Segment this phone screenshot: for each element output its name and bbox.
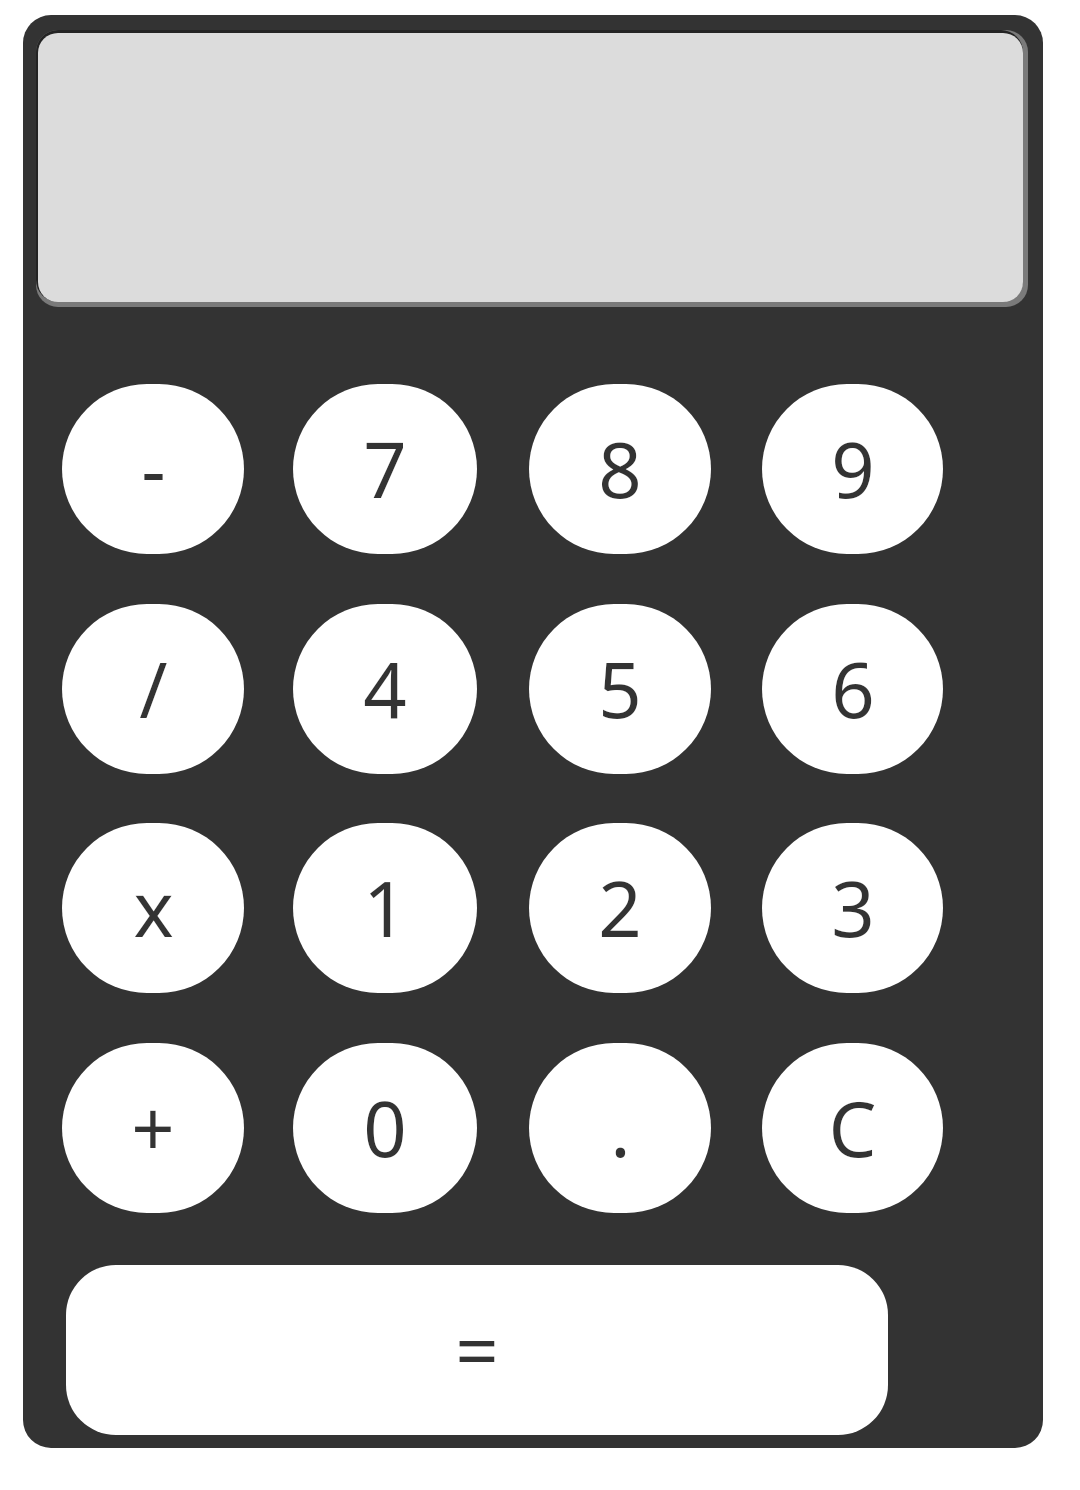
button[interactable]: . [529,1043,711,1213]
staticText: = [455,1298,499,1402]
staticText: 7 [363,417,407,521]
button[interactable]: 0 [293,1043,477,1213]
staticText: . [610,1076,631,1180]
staticText: + [131,1076,175,1180]
button[interactable]: C [762,1043,943,1213]
button[interactable]: 4 [293,604,477,774]
staticText: - [141,417,166,521]
button[interactable]: - [62,384,244,554]
button[interactable]: + [62,1043,244,1213]
staticText: 9 [831,417,875,521]
button[interactable]: x [62,823,244,993]
staticText: C [828,1076,877,1180]
staticText: / [139,637,168,741]
button[interactable]: = [66,1265,888,1435]
staticText: 1 [363,856,407,960]
staticText: x [133,856,174,960]
button[interactable]: / [62,604,244,774]
staticText: 3 [831,856,875,960]
staticText: 4 [363,637,407,741]
button[interactable]: 7 [293,384,477,554]
staticText: 6 [831,637,875,741]
staticText: 5 [598,637,642,741]
button[interactable]: 9 [762,384,943,554]
button[interactable]: 1 [293,823,477,993]
staticText: 2 [598,856,642,960]
button[interactable]: 3 [762,823,943,993]
button[interactable]: 6 [762,604,943,774]
button[interactable]: 8 [529,384,711,554]
button[interactable]: Calculator display [38,33,1023,302]
button[interactable]: 2 [529,823,711,993]
staticText: 8 [598,417,642,521]
button[interactable]: 5 [529,604,711,774]
staticText: 0 [363,1076,407,1180]
